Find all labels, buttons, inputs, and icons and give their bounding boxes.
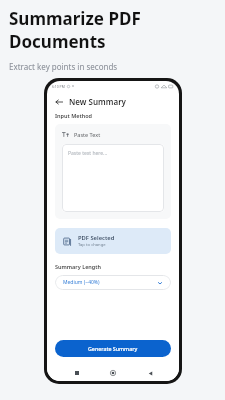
button[interactable]: Generate Summary [55, 340, 171, 357]
staticText: Input Method [55, 112, 93, 119]
staticText: PDF Selected [78, 234, 115, 242]
button[interactable]: Back [143, 366, 157, 380]
button[interactable]: Home [106, 366, 120, 380]
staticText: Tap to change [78, 242, 106, 248]
staticText: Generate Summary [88, 345, 138, 352]
button[interactable]: Recent apps [70, 366, 84, 380]
staticText: Extract key points in seconds [9, 61, 118, 72]
staticText: Paste Text [74, 131, 101, 138]
staticText: New Summary [69, 96, 126, 107]
staticText: 6:10 PM [52, 84, 65, 89]
staticText: Summarize PDF [9, 7, 141, 30]
staticText: Medium (~40%) [63, 279, 157, 286]
button[interactable]: Paste text here... [62, 144, 164, 212]
staticText: Summary Length [55, 263, 102, 270]
staticText: Documents [9, 30, 106, 53]
staticText: Paste text here... [68, 150, 108, 157]
button[interactable]: Paste Text [55, 124, 171, 219]
button[interactable]: Back [52, 95, 66, 109]
button[interactable]: Medium (~40%) [55, 275, 171, 290]
button[interactable]: PDF Selected [55, 228, 171, 254]
